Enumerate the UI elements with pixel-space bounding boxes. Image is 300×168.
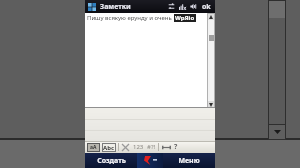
staticText: 123 (133, 143, 144, 151)
button[interactable]: Start (87, 2, 96, 11)
button[interactable]: Handwriting (121, 143, 130, 152)
staticText: WpЯio (175, 14, 195, 22)
button[interactable]: Scroll (207, 13, 215, 108)
staticText: Заметки (100, 2, 131, 12)
staticText: Abc (103, 144, 115, 152)
staticText: #?! (147, 143, 156, 151)
button[interactable]: Создать (85, 153, 137, 168)
staticText: Создать (97, 156, 126, 166)
button[interactable]: Abc (102, 143, 116, 152)
button[interactable]: Pen tool (137, 153, 163, 168)
button[interactable]: #?! (147, 143, 156, 151)
button[interactable]: Signal (178, 2, 187, 11)
button[interactable]: Пишу всякую ерунду и очень (85, 13, 207, 108)
button[interactable]: Keyboard layout (87, 143, 100, 152)
button[interactable]: Input options (161, 143, 171, 152)
staticText: аА (90, 144, 97, 151)
button[interactable]: ok (201, 2, 212, 12)
staticText: ? (174, 142, 178, 152)
button[interactable]: Help (174, 142, 178, 152)
staticText: Пишу всякую ерунду и очень (87, 14, 174, 22)
button[interactable]: 123 (133, 143, 144, 151)
button[interactable]: Volume (189, 2, 198, 11)
staticText: ok (202, 2, 211, 12)
staticText: Меню (178, 156, 200, 166)
button[interactable]: Connectivity (167, 2, 176, 11)
button[interactable]: Меню (163, 153, 215, 168)
